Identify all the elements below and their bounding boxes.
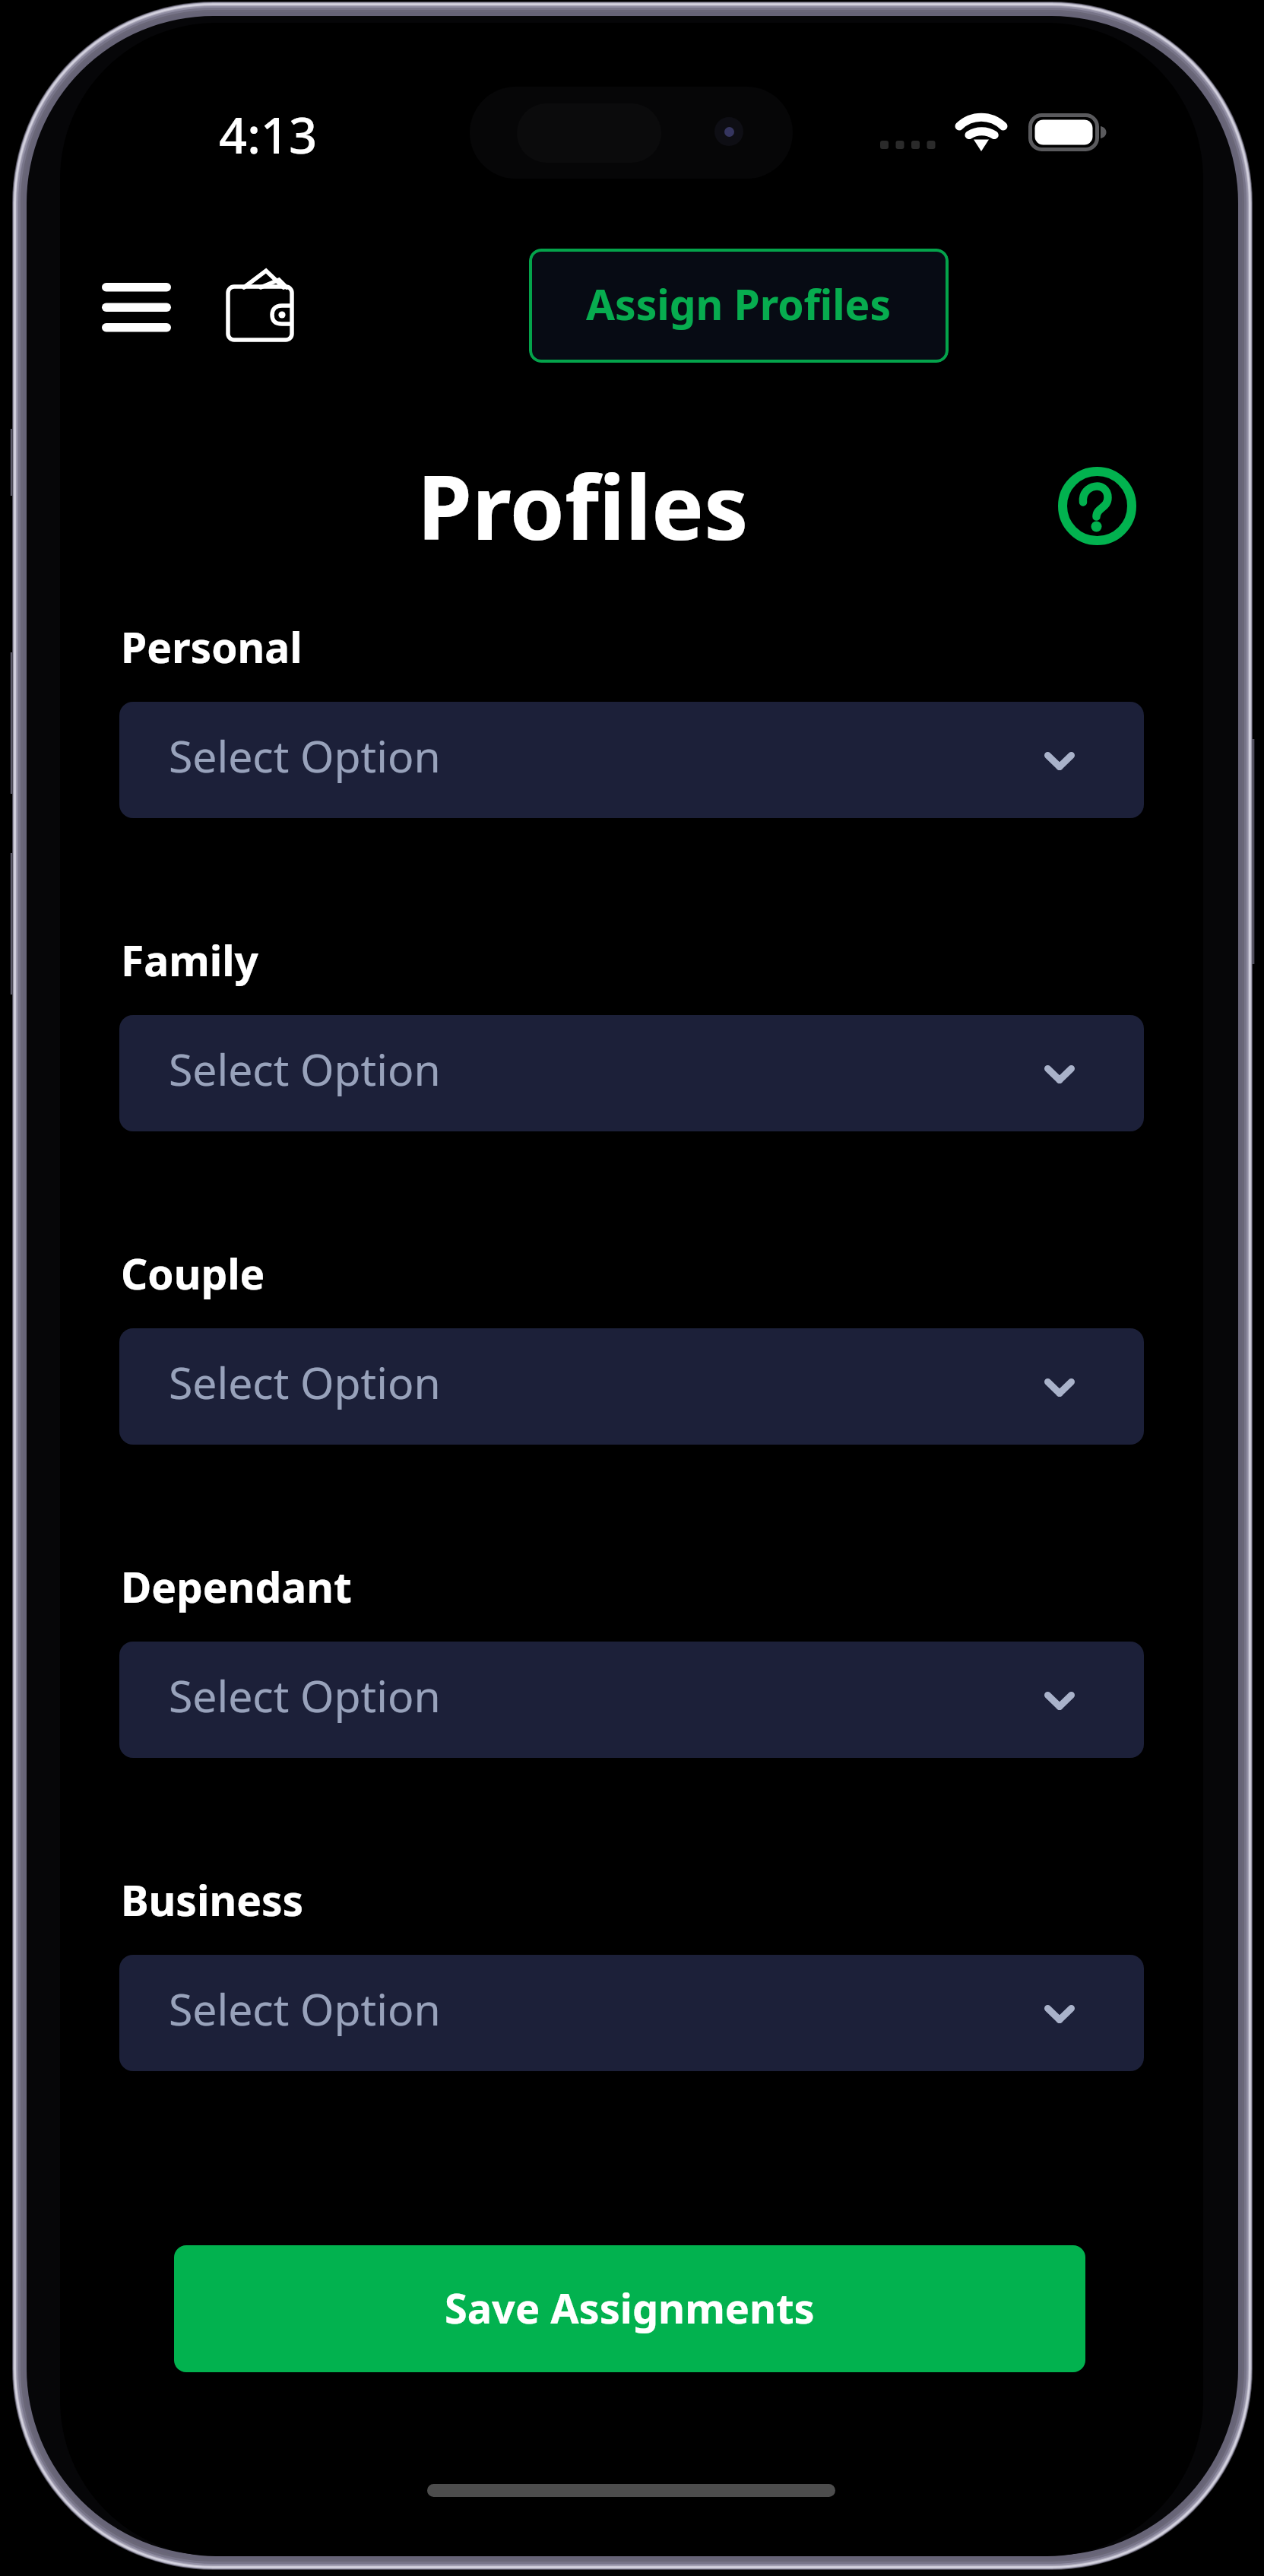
button[interactable]: Help [1047,455,1148,557]
button[interactable]: Select Option [119,702,1144,818]
button[interactable]: Select Option [119,1642,1144,1758]
staticText: Couple [121,1245,265,1302]
staticText: Dependant [121,1558,352,1615]
staticText: Family [121,931,259,988]
button[interactable]: Save Assignments [174,2245,1085,2372]
staticText: 4:13 [219,101,318,169]
staticText: Select Option [169,1353,441,1412]
staticText: Personal [121,618,303,675]
button[interactable]: Select Option [119,1328,1144,1445]
staticText: Profiles [417,446,749,566]
staticText: Select Option [169,726,441,785]
button[interactable]: Assign Profiles [529,249,949,363]
button[interactable]: Wallet [211,254,308,356]
staticText: Assign Profiles [586,275,892,332]
staticText: Business [121,1871,304,1928]
button[interactable]: Select Option [119,1955,1144,2071]
button[interactable]: Select Option [119,1015,1144,1131]
staticText: Select Option [169,1666,441,1725]
staticText: Save Assignments [445,2279,815,2336]
button[interactable]: Menu [71,255,201,355]
staticText: Select Option [169,1039,441,1099]
staticText: Select Option [169,1979,441,2038]
